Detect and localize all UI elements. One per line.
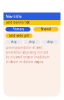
button[interactable]: Second	[33, 27, 58, 31]
staticText: Gold wide pill	[8, 34, 29, 37]
staticText: Primary	[12, 27, 23, 31]
staticText: Second	[41, 27, 51, 31]
button[interactable]: Gold wide pill	[5, 33, 32, 38]
staticText: Gold banner text	[5, 21, 29, 24]
button[interactable]: chip	[42, 40, 58, 44]
staticText: do eiusmod tempor incididunt	[5, 55, 49, 59]
staticText: Lorem ipsum dolor sit amet	[5, 46, 42, 49]
staticText: chip	[47, 40, 53, 44]
staticText: ut labore et dolore magna.	[5, 60, 43, 64]
staticText: Nav title	[5, 14, 21, 19]
staticText: chip	[11, 40, 17, 44]
button[interactable]: chip	[5, 40, 22, 44]
button[interactable]: chip	[24, 40, 40, 44]
staticText: chip	[29, 40, 35, 44]
button[interactable]: Primary	[5, 27, 30, 31]
staticText: consectetur adipiscing elit sed	[5, 51, 48, 54]
